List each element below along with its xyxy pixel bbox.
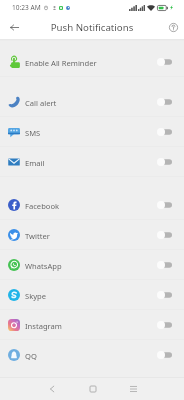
staticText: SMS	[25, 128, 154, 138]
button[interactable]: Facebook	[0, 190, 184, 220]
staticText: QQ	[25, 351, 154, 361]
button[interactable]: QQ	[0, 340, 184, 370]
staticText: Call alert	[25, 98, 154, 108]
staticText: Instagram	[25, 321, 154, 331]
button[interactable]: WhatsApp	[0, 250, 184, 280]
button[interactable]: Call alert	[0, 87, 184, 117]
button[interactable]: Skype	[0, 280, 184, 310]
button[interactable]: Instagram	[0, 310, 184, 340]
button[interactable]: Email	[0, 147, 184, 177]
button[interactable]: Back	[0, 15, 28, 39]
button[interactable]: Twitter	[0, 220, 184, 250]
staticText: Twitter	[25, 231, 154, 241]
staticText: WhatsApp	[25, 261, 154, 271]
staticText: Push Notifications	[0, 21, 184, 34]
button[interactable]: Recent apps	[113, 378, 154, 400]
staticText: Enable All Reminder	[25, 58, 154, 68]
button[interactable]: SMS	[0, 117, 184, 147]
staticText: Facebook	[25, 201, 154, 211]
button[interactable]: Help	[162, 15, 184, 39]
staticText: Skype	[25, 291, 154, 301]
button[interactable]: Enable All Reminder	[0, 47, 184, 77]
staticText: Email	[25, 158, 154, 168]
button[interactable]: Back	[31, 378, 72, 400]
staticText: 10:23 AM	[12, 3, 41, 12]
button[interactable]: Home	[72, 378, 113, 400]
